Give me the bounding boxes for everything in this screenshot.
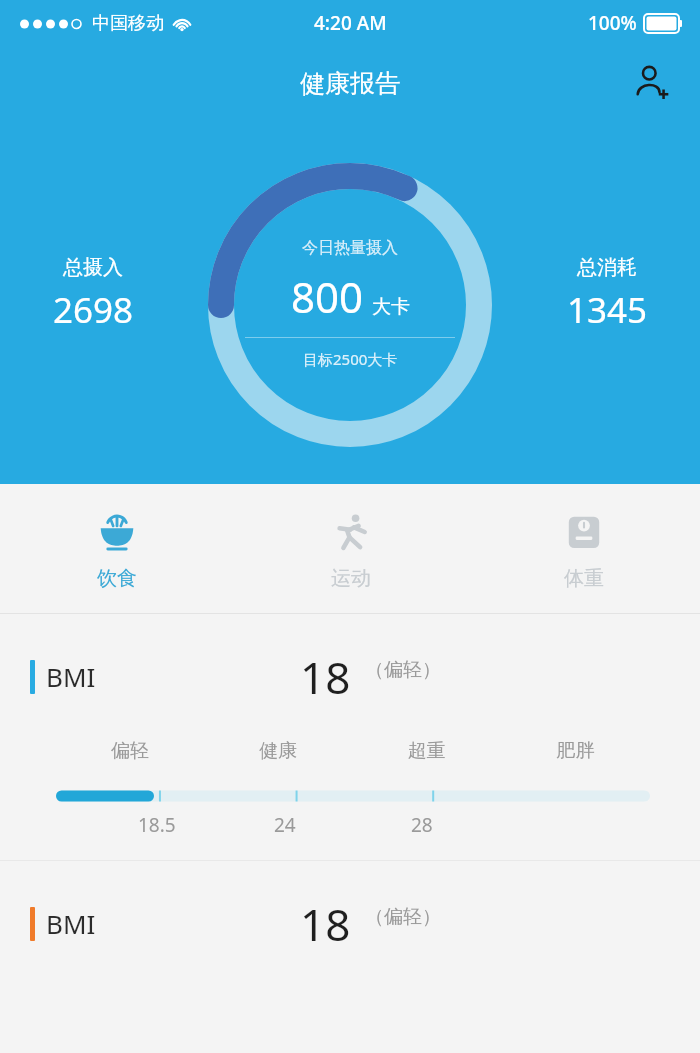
staticText: 饮食 [97, 566, 137, 591]
staticText: 超重 [352, 739, 501, 763]
staticText: 今日热量摄入 [302, 238, 398, 258]
staticText: 4:20 AM [314, 10, 387, 36]
button[interactable]: 饮食 [0, 484, 234, 613]
staticText: BMI [46, 906, 96, 941]
button[interactable]: BMI [0, 614, 700, 739]
staticText: 大卡 [372, 295, 410, 319]
button[interactable]: 体重 [467, 484, 700, 613]
staticText: 偏轻 [56, 739, 204, 763]
button[interactable]: BMI [0, 861, 700, 986]
staticText: 1345 [567, 286, 648, 334]
staticText: 目标2500大卡 [303, 349, 398, 369]
staticText: （偏轻） [365, 658, 441, 682]
staticText: 18.5 [138, 812, 176, 838]
staticText: 100% [588, 10, 637, 36]
staticText: 肥胖 [501, 739, 650, 763]
staticText: 2698 [53, 286, 134, 334]
staticText: 体重 [564, 566, 604, 591]
staticText: 28 [411, 812, 433, 838]
staticText: 18 [300, 647, 351, 707]
staticText: 总摄入 [63, 255, 123, 280]
staticText: 健康报告 [300, 68, 400, 99]
button[interactable]: 运动 [234, 484, 467, 613]
button[interactable]: Add person [628, 58, 676, 106]
staticText: 运动 [331, 566, 371, 591]
staticText: BMI [46, 659, 96, 694]
staticText: 18 [300, 894, 351, 954]
staticText: 中国移动 [92, 12, 164, 35]
staticText: 健康 [204, 739, 352, 763]
staticText: （偏轻） [365, 905, 441, 929]
staticText: 24 [274, 812, 296, 838]
staticText: 800 [291, 268, 364, 325]
staticText: 总消耗 [577, 255, 637, 280]
